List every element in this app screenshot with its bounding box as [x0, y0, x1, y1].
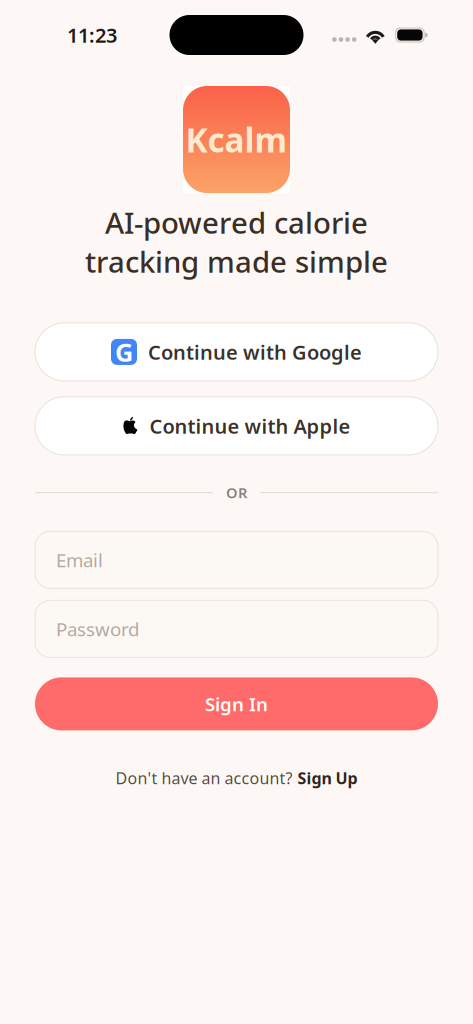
- staticText: OR: [226, 483, 247, 502]
- button[interactable]: Sign Up: [297, 767, 357, 789]
- staticText: Continue with Google: [148, 339, 362, 365]
- staticText: tracking made simple: [85, 242, 388, 281]
- staticText: Sign Up: [297, 767, 357, 789]
- staticText: 11:23: [67, 22, 117, 48]
- staticText: Password: [56, 616, 139, 641]
- button[interactable]: G: [35, 323, 438, 381]
- button[interactable]: Continue with Apple: [35, 397, 438, 455]
- staticText: Don't have an account?: [115, 767, 292, 789]
- staticText: G: [115, 335, 133, 369]
- button[interactable]: Sign In: [35, 677, 438, 730]
- staticText: Sign In: [205, 691, 268, 716]
- button[interactable]: Password: [35, 600, 438, 657]
- staticText: AI-powered calorie: [105, 203, 368, 242]
- staticText: Email: [56, 547, 103, 572]
- staticText: Kcalm: [185, 117, 287, 162]
- staticText: Continue with Apple: [149, 413, 350, 439]
- button[interactable]: Email: [35, 531, 438, 588]
